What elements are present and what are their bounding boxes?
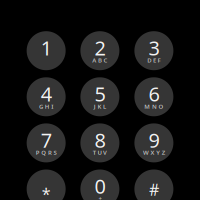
staticText: 0 — [94, 172, 105, 200]
staticText: WXYZ — [143, 148, 165, 156]
button[interactable]: 1 — [27, 31, 66, 70]
staticText: GHI — [39, 102, 53, 110]
staticText: 7 — [41, 126, 52, 153]
staticText: # — [149, 179, 159, 200]
button[interactable]: 3 — [134, 31, 173, 70]
staticText: 2 — [94, 34, 105, 61]
staticText: + — [98, 194, 101, 200]
staticText: 3 — [148, 34, 159, 61]
staticText: ABC — [92, 56, 107, 64]
button[interactable]: # — [134, 169, 173, 200]
button[interactable]: 5 — [80, 77, 119, 116]
staticText: 4 — [41, 80, 52, 107]
button[interactable]: 0 — [80, 169, 119, 200]
button[interactable]: 6 — [134, 77, 173, 116]
staticText: TUV — [93, 148, 107, 156]
button[interactable]: 9 — [134, 123, 173, 162]
staticText: JKL — [94, 102, 106, 110]
button[interactable]: 4 — [27, 77, 66, 116]
staticText: MNO — [144, 102, 163, 110]
staticText: * — [42, 183, 51, 200]
button[interactable]: 7 — [27, 123, 66, 162]
staticText: 1 — [41, 34, 52, 61]
staticText: 9 — [148, 126, 159, 153]
staticText: 5 — [94, 80, 105, 107]
staticText: DEF — [147, 56, 160, 64]
button[interactable]: 8 — [80, 123, 119, 162]
staticText: 8 — [94, 126, 105, 153]
button[interactable]: 2 — [80, 31, 119, 70]
staticText: PQRS — [36, 148, 57, 156]
staticText: 6 — [148, 80, 159, 107]
button[interactable]: * — [27, 169, 66, 200]
